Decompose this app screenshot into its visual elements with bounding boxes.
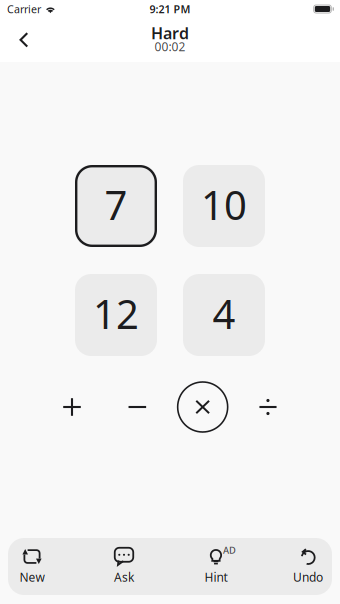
staticText: New: [19, 569, 44, 585]
staticText: AD: [223, 544, 236, 556]
staticText: Hint: [204, 569, 227, 585]
staticText: Ask: [114, 569, 134, 585]
button[interactable]: 12: [75, 274, 157, 356]
staticText: 00:02: [154, 39, 185, 55]
staticText: 7: [104, 178, 127, 231]
button[interactable]: New: [11, 537, 53, 596]
button[interactable]: Back: [8, 23, 40, 57]
button[interactable]: Divide: [243, 382, 293, 432]
button[interactable]: Ask: [103, 537, 145, 596]
staticText: Hard: [151, 22, 189, 44]
staticText: Carrier: [7, 2, 41, 16]
button[interactable]: Undo: [287, 537, 329, 596]
staticText: 10: [201, 178, 247, 231]
staticText: 9:21 PM: [149, 2, 190, 16]
button[interactable]: 4: [183, 274, 265, 356]
staticText: 12: [93, 287, 139, 340]
button[interactable]: Multiply: [178, 382, 228, 432]
staticText: Undo: [293, 569, 323, 585]
staticText: 4: [212, 287, 235, 340]
button[interactable]: Subtract: [112, 382, 162, 432]
button[interactable]: 7: [75, 165, 157, 247]
button[interactable]: 10: [183, 165, 265, 247]
button[interactable]: AD: [195, 537, 237, 596]
button[interactable]: Add: [47, 382, 97, 432]
